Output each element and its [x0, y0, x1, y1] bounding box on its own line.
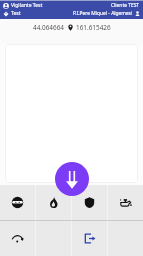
staticText: Vigilante Test: [11, 2, 43, 9]
staticText: P.I.Pere Miquel - Algemesi: [73, 10, 133, 17]
staticText: Cliente TEST: [111, 2, 140, 9]
button[interactable]: Shield: [72, 185, 107, 220]
staticText: Test: [11, 10, 21, 17]
button[interactable]: Fire: [36, 185, 71, 220]
button[interactable]: Speed: [0, 221, 35, 256]
button[interactable]: Ninja: [0, 185, 35, 220]
button[interactable]: Oil: [108, 185, 143, 220]
button[interactable]: Logout: [72, 221, 107, 256]
button[interactable]: Descend: [55, 162, 89, 196]
staticText: 44.064664: [33, 23, 64, 32]
staticText: 161.615426: [76, 23, 111, 32]
